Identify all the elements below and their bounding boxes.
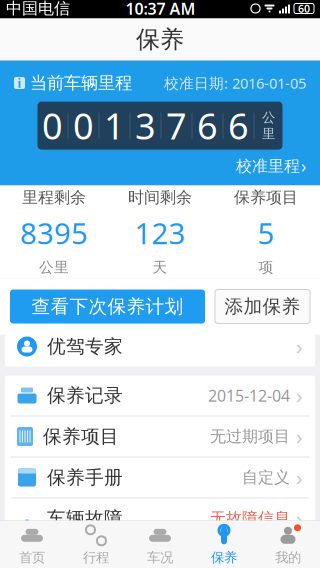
staticText: 0 xyxy=(73,102,94,149)
staticText: › xyxy=(296,463,303,492)
staticText: › xyxy=(296,422,303,451)
staticText: 3 xyxy=(135,102,156,149)
staticText: 0 xyxy=(42,102,63,149)
button[interactable]: 我的 xyxy=(256,520,320,568)
staticText: 时间剩余 xyxy=(128,188,192,207)
staticText: 1 xyxy=(104,102,125,149)
staticText: 行程 xyxy=(83,549,109,566)
staticText: 车辆故障 xyxy=(47,507,123,530)
staticText: 保养项目 xyxy=(43,425,119,448)
staticText: 123 xyxy=(134,213,185,252)
staticText: 保养手册 xyxy=(47,466,123,489)
button[interactable]: 车辆故障 xyxy=(5,498,315,538)
staticText: 公 xyxy=(262,109,275,126)
staticText: 保养 xyxy=(136,25,184,54)
staticText: 校准里程 xyxy=(236,156,300,176)
button[interactable]: 车况 xyxy=(128,520,192,568)
staticText: › xyxy=(301,155,306,178)
staticText: 项 xyxy=(258,258,273,276)
staticText: 自定义 xyxy=(242,468,290,487)
button[interactable]: 保养项目 xyxy=(5,416,315,456)
button[interactable]: 添加保养 xyxy=(215,289,310,323)
staticText: 首页 xyxy=(19,549,45,566)
staticText: 无故障信息 xyxy=(210,509,290,528)
staticText: › xyxy=(296,332,303,361)
staticText: 60 xyxy=(298,1,310,16)
staticText: 6 xyxy=(228,102,249,149)
staticText: 6 xyxy=(197,102,218,149)
staticText: 当前车辆里程 xyxy=(30,72,132,94)
staticText: 添加保养 xyxy=(224,295,300,318)
staticText: 我的 xyxy=(275,549,301,566)
button[interactable]: 查看下次保养计划 xyxy=(10,289,205,323)
staticText: 优驾专家 xyxy=(47,335,123,358)
button[interactable]: 优驾专家 xyxy=(5,326,315,366)
button[interactable]: 行程 xyxy=(64,520,128,568)
staticText: 公里 xyxy=(39,258,69,276)
staticText: 保养记录 xyxy=(47,384,123,407)
button[interactable]: 首页 xyxy=(0,520,64,568)
staticText: 10:37 AM xyxy=(125,0,195,19)
button[interactable]: 校准里程 xyxy=(0,150,320,184)
staticText: 保养项目 xyxy=(234,188,298,207)
staticText: 里 xyxy=(262,126,275,142)
button[interactable]: 保养手册 xyxy=(5,457,315,497)
button[interactable]: 保养 xyxy=(192,520,256,568)
staticText: 车况 xyxy=(147,549,173,566)
staticText: 查看下次保养计划 xyxy=(31,295,183,318)
staticText: 2015-12-04 xyxy=(208,385,290,406)
staticText: 里程剩余 xyxy=(22,188,86,207)
staticText: 中国电信 xyxy=(6,0,70,18)
staticText: 无过期项目 xyxy=(210,427,290,446)
staticText: 5 xyxy=(257,213,274,252)
staticText: 天 xyxy=(152,258,167,276)
staticText: 8395 xyxy=(20,213,88,252)
staticText: 保养 xyxy=(211,549,237,566)
staticText: › xyxy=(296,504,303,533)
staticText: i xyxy=(17,75,21,91)
button[interactable]: 保养记录 xyxy=(5,375,315,415)
staticText: 校准日期: 2016-01-05 xyxy=(164,73,306,93)
staticText: 7 xyxy=(166,102,187,149)
staticText: › xyxy=(296,381,303,410)
